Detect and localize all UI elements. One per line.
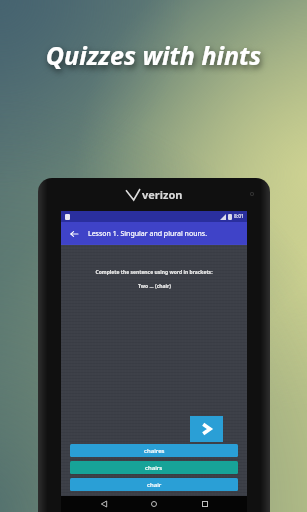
staticText: Lesson 1. Singular and plural nouns.: [88, 229, 208, 239]
staticText: Quizzes with hints: [0, 38, 307, 72]
staticText: chairs: [145, 464, 163, 472]
staticText: 8:01: [234, 213, 244, 220]
button[interactable]: chaires: [70, 444, 238, 457]
staticText: verizon: [142, 187, 183, 202]
button[interactable]: Next question: [190, 416, 223, 442]
button[interactable]: chairs: [70, 461, 238, 474]
button[interactable]: Back: [96, 496, 112, 512]
staticText: chaires: [144, 447, 165, 455]
button[interactable]: Recent apps: [197, 496, 213, 512]
button[interactable]: Home: [146, 496, 162, 512]
button[interactable]: chair: [70, 478, 238, 491]
staticText: Complete the sentence using word in brac…: [95, 269, 213, 276]
staticText: chair: [147, 481, 162, 489]
button[interactable]: Back: [67, 227, 81, 241]
staticText: Two ... (chair): [138, 283, 171, 290]
